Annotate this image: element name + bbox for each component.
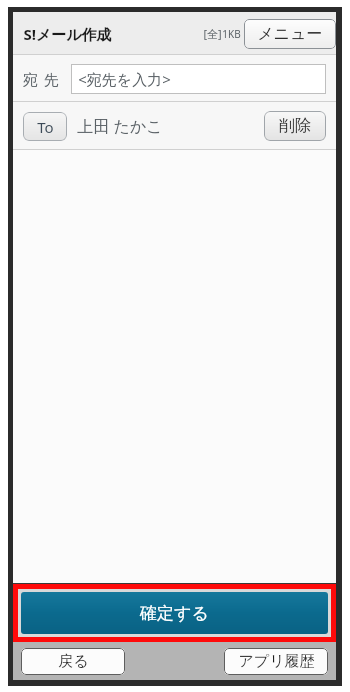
button[interactable]: 削除: [264, 111, 326, 141]
staticText: 削除: [279, 116, 311, 136]
staticText: 上田 たかこ: [77, 115, 163, 137]
button[interactable]: メニュー: [244, 19, 336, 49]
staticText: アプリ履歴: [238, 652, 315, 671]
button[interactable]: 確定する: [21, 592, 328, 634]
staticText: 確定する: [140, 603, 209, 624]
staticText: メニュー: [257, 24, 323, 44]
button[interactable]: <宛先を入力>: [71, 64, 326, 94]
staticText: [全]: [203, 26, 222, 41]
button[interactable]: アプリ履歴: [224, 648, 328, 675]
staticText: To: [37, 117, 54, 137]
staticText: 1KB: [222, 27, 241, 41]
button[interactable]: To: [23, 112, 67, 141]
staticText: S!メール作成: [23, 24, 112, 44]
staticText: <宛先を入力>: [78, 69, 171, 89]
button[interactable]: 戻る: [21, 648, 125, 675]
staticText: 戻る: [58, 652, 89, 671]
staticText: 宛 先: [23, 69, 60, 89]
